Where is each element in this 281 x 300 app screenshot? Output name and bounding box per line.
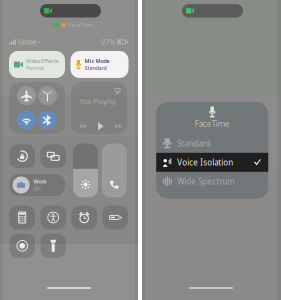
staticText: Globe	[16, 38, 37, 46]
button[interactable]: Calculator	[9, 205, 35, 229]
button[interactable]: Cellular Data	[38, 86, 57, 105]
button[interactable]: Work	[9, 174, 65, 196]
button[interactable]: Next Track	[115, 124, 122, 129]
staticText: Not Playing	[80, 97, 116, 106]
staticText: Wide Spectrum	[177, 176, 234, 187]
button[interactable]: Flashlight	[40, 234, 66, 258]
button[interactable]: Brightness	[73, 143, 98, 197]
button[interactable]: Airplane Mode	[17, 86, 36, 105]
button[interactable]: Accessibility	[40, 205, 66, 229]
staticText: 27%	[101, 38, 115, 46]
staticText: Portrait	[26, 64, 44, 72]
button[interactable]: Mic Mode	[70, 51, 128, 78]
button[interactable]: Rotation Lock	[9, 144, 35, 168]
button[interactable]: Alarm	[71, 205, 97, 229]
staticText: Standard	[84, 64, 106, 72]
staticText: On	[33, 185, 40, 192]
staticText: Video Effects	[26, 57, 59, 64]
button[interactable]: AirPlay	[114, 88, 120, 94]
staticText: FaceTime	[68, 21, 92, 29]
button[interactable]: Bluetooth	[38, 111, 57, 130]
button[interactable]: Screen Mirroring	[40, 144, 66, 168]
button[interactable]: Screen Recording	[9, 234, 35, 258]
staticText: Voice Isolation	[177, 157, 233, 168]
button[interactable]: Wi-Fi	[17, 111, 36, 130]
staticText: FaceTime	[195, 118, 230, 129]
staticText: Standard	[177, 138, 210, 149]
button[interactable]: Voice Isolation	[156, 153, 268, 172]
staticText: ▾	[37, 40, 40, 44]
button[interactable]: Low Power Mode	[102, 205, 128, 229]
button[interactable]: Standard	[156, 134, 268, 153]
button[interactable]: Previous Track	[79, 124, 86, 129]
button[interactable]: Play	[97, 122, 104, 130]
staticText: Mic Mode	[84, 57, 109, 64]
staticText: Work	[33, 178, 46, 185]
button[interactable]: Wide Spectrum	[156, 172, 268, 191]
button[interactable]: Video Effects	[9, 51, 65, 78]
button[interactable]: Volume	[102, 143, 127, 197]
